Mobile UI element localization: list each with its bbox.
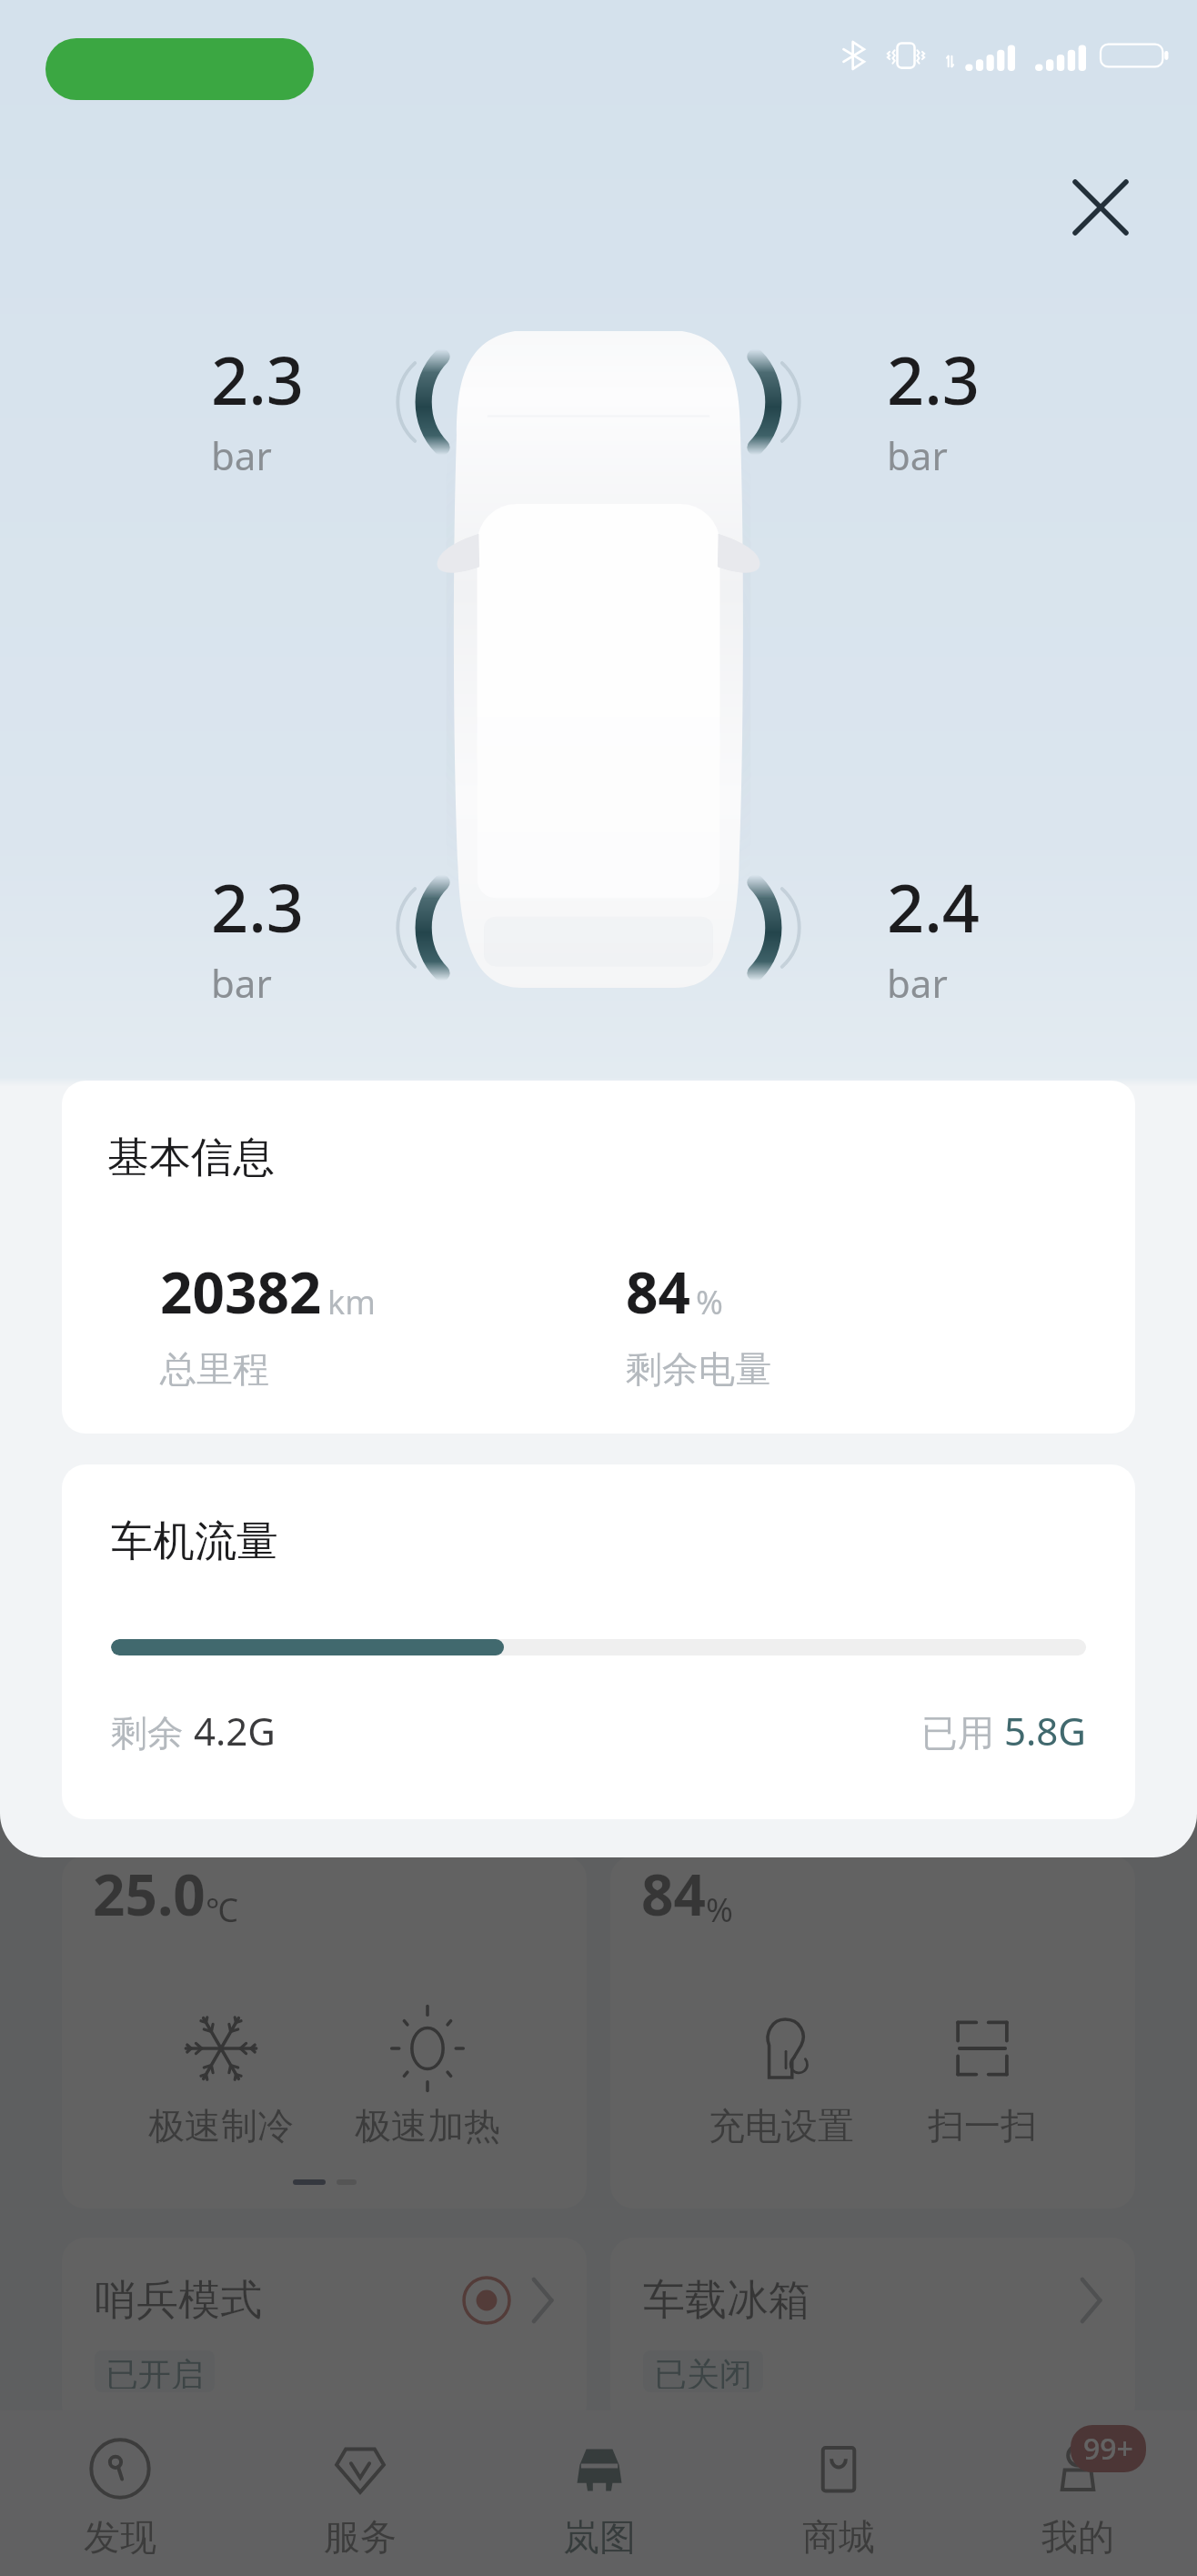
button[interactable]: 发现 [0,2410,240,2576]
button[interactable]: 84 [610,1856,1135,2209]
staticText: 极速加热 [355,2103,500,2148]
button[interactable]: 车机流量 [62,1464,1135,1819]
staticText: bar [211,957,272,1009]
staticText: 已关闭 [654,2354,752,2389]
button[interactable]: 哨兵模式 [62,2238,587,2429]
staticText: 商城 [802,2514,875,2560]
button[interactable]: 充电设置 [703,2005,860,2154]
staticText: 5.8G [1004,1705,1086,1756]
staticText: 车载冰箱 [643,2274,810,2327]
staticText: 极速制冷 [148,2103,294,2148]
staticText: bar [211,429,272,481]
staticText: 已开启 [106,2354,204,2389]
button[interactable]: 25.0 [62,1856,587,2209]
button[interactable]: 服务 [240,2410,479,2576]
staticText: bar [887,429,948,481]
staticText: 2.4 [887,862,980,951]
button[interactable]: 基本信息 [62,1081,1135,1434]
staticText: 车机流量 [111,1515,278,1568]
staticText: 20382 [160,1253,322,1330]
staticText: 2.3 [887,335,980,424]
staticText: 84 [641,1856,706,1932]
staticText: 充电设置 [709,2103,854,2148]
button[interactable]: 极速加热 [349,2005,506,2154]
staticText: 我的 [1041,2514,1114,2560]
button[interactable]: 99+ [958,2410,1197,2576]
button[interactable]: 车载冰箱 [610,2238,1135,2429]
staticText: 99+ [1083,2429,1133,2469]
staticText: 岚图 [563,2514,636,2560]
staticText: 剩余 [111,1706,194,1756]
staticText: 剩余电量 [626,1346,771,1392]
button[interactable]: 关闭 [1044,151,1157,264]
staticText: 基本信息 [107,1132,275,1184]
button[interactable]: 商城 [719,2410,958,2576]
staticText: 服务 [324,2514,397,2560]
staticText: 2.3 [211,335,304,424]
staticText: 4.2G [194,1705,276,1756]
staticText: % [706,1887,733,1932]
staticText: 总里程 [160,1346,269,1392]
button[interactable]: 极速制冷 [143,2005,299,2154]
staticText: ℃ [206,1887,238,1932]
staticText: 2.3 [211,862,304,951]
staticText: 扫一扫 [928,2103,1037,2148]
staticText: 发现 [84,2514,156,2560]
staticText: bar [887,957,948,1009]
staticText: 25.0 [93,1856,206,1932]
staticText: % [696,1280,723,1324]
button[interactable]: 岚图 [479,2410,719,2576]
staticText: km [327,1280,376,1324]
staticText: 84 [626,1253,690,1330]
staticText: 已用 [921,1706,1004,1756]
staticText: 哨兵模式 [95,2274,262,2327]
button[interactable]: 扫一扫 [922,2005,1042,2154]
